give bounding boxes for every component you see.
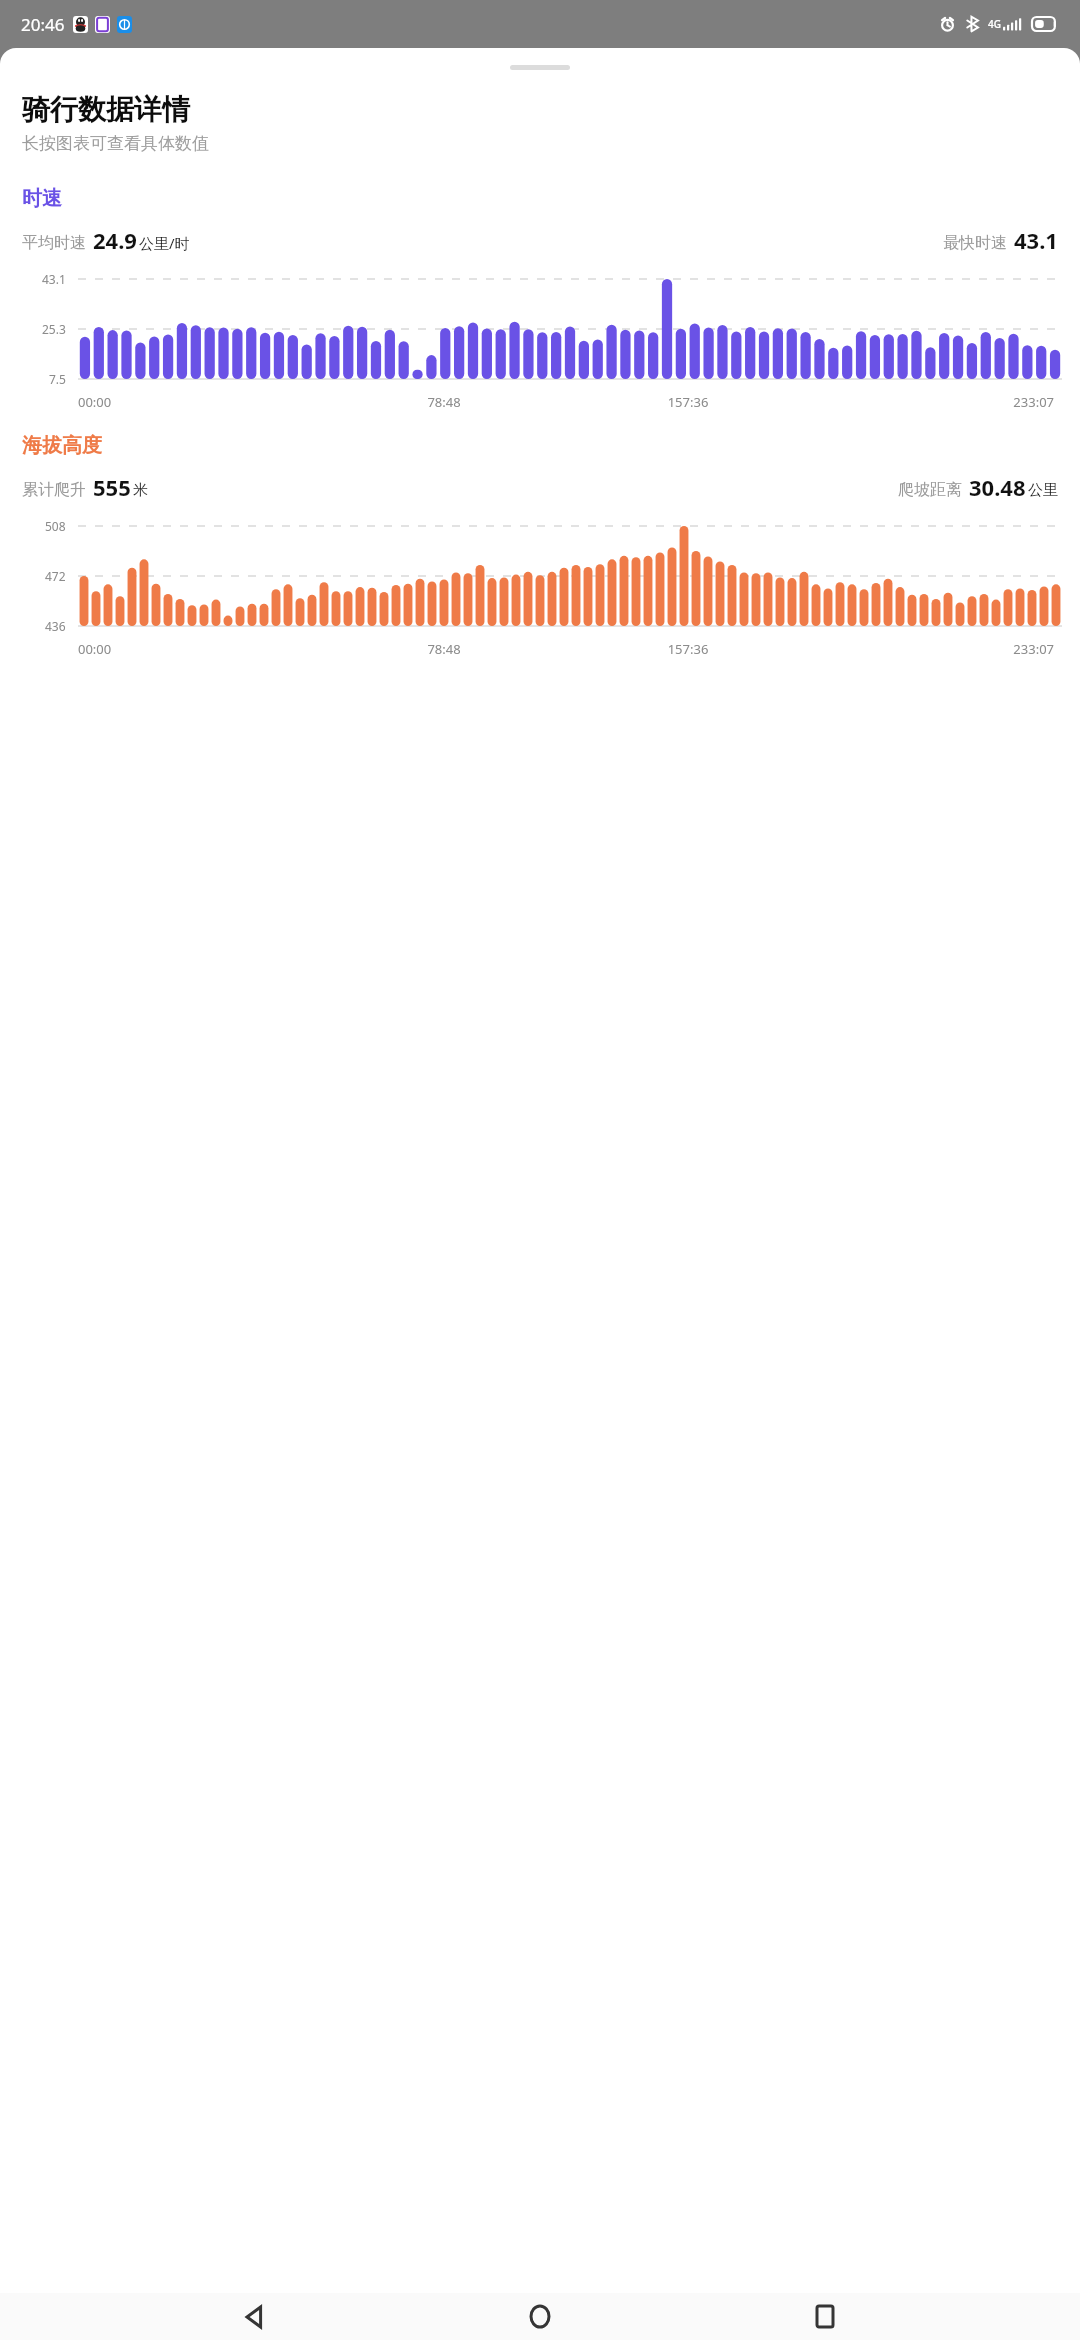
button[interactable]: Recent apps <box>795 2293 855 2340</box>
staticText: 555 <box>93 472 131 502</box>
staticText: 233:07 <box>810 393 1054 411</box>
staticText: 20:46 <box>21 13 65 36</box>
staticText: 472 <box>45 568 66 584</box>
staticText: 时速 <box>22 186 62 211</box>
staticText: 公里 <box>1028 481 1058 500</box>
staticText: 00:00 <box>78 640 322 658</box>
staticText: 海拔高度 <box>22 433 102 458</box>
staticText: 25.3 <box>42 321 66 337</box>
staticText: 米 <box>133 481 148 500</box>
staticText: 78:48 <box>322 393 566 411</box>
staticText: 30.48 <box>969 472 1026 502</box>
staticText: 00:00 <box>78 393 322 411</box>
staticText: 43.1 <box>1014 225 1058 255</box>
staticText: 公里/时 <box>139 233 190 253</box>
staticText: 最快时速 <box>943 233 1007 253</box>
staticText: 爬坡距离 <box>898 480 962 500</box>
button[interactable]: Back <box>225 2293 285 2340</box>
staticText: 7.5 <box>49 371 66 387</box>
staticText: 24.9 <box>93 225 137 255</box>
staticText: 157:36 <box>566 640 810 658</box>
staticText: 累计爬升 <box>22 480 86 500</box>
staticText: 233:07 <box>810 640 1054 658</box>
staticText: 78:48 <box>322 640 566 658</box>
staticText: 4G <box>988 17 1001 31</box>
staticText: 平均时速 <box>22 233 86 253</box>
button[interactable]: Home <box>510 2293 570 2340</box>
staticText: 长按图表可查看具体数值 <box>22 133 209 154</box>
staticText: 508 <box>45 518 66 534</box>
staticText: 43.1 <box>42 271 66 287</box>
staticText: 骑行数据详情 <box>22 92 190 127</box>
staticText: 157:36 <box>566 393 810 411</box>
staticText: 436 <box>45 618 66 634</box>
